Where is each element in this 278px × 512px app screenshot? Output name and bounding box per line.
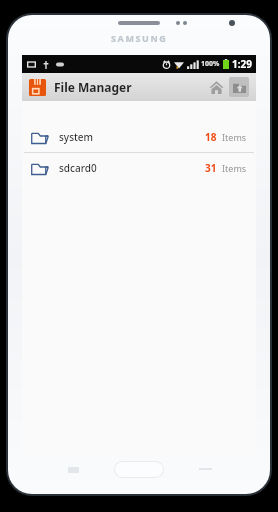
staticText: system (59, 130, 94, 144)
button[interactable]: sdcard0 (22, 153, 256, 183)
staticText: File Manager (54, 79, 132, 95)
staticText: 31 (205, 161, 217, 175)
button[interactable]: Up one level (229, 77, 249, 97)
staticText: SAMSUNG (111, 32, 168, 44)
staticText: Items (222, 162, 247, 174)
button[interactable]: Home button (114, 461, 164, 478)
staticText: 1:29 (232, 57, 252, 71)
staticText: Items (222, 131, 247, 143)
staticText: sdcard0 (59, 161, 97, 175)
button[interactable]: Home (205, 76, 227, 98)
staticText: 18 (205, 130, 217, 144)
button[interactable]: system (22, 122, 256, 152)
staticText: 100% (201, 59, 220, 69)
